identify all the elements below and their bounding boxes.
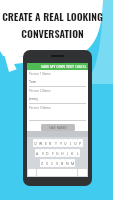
button[interactable]: D	[45, 149, 50, 157]
staticText: Z	[41, 161, 44, 166]
staticText: J	[67, 151, 68, 156]
staticText: A	[36, 151, 39, 156]
button[interactable]: B	[60, 159, 65, 167]
staticText: P	[79, 141, 82, 146]
button[interactable]: Q	[33, 139, 38, 147]
button[interactable]: V	[55, 159, 60, 167]
staticText: SAVE MY OWN TEXT	[41, 64, 74, 69]
staticText: U	[64, 141, 67, 146]
button[interactable]: O	[73, 139, 78, 147]
button[interactable]: R	[48, 139, 53, 147]
button[interactable]: F	[50, 149, 55, 157]
staticText: Q	[34, 141, 37, 146]
button[interactable]: SAVE NAMES	[41, 124, 75, 131]
staticText: T	[55, 141, 57, 146]
button[interactable]: X	[45, 159, 50, 167]
button[interactable]: E	[43, 139, 48, 147]
staticText: H	[61, 151, 64, 156]
staticText: I	[70, 141, 72, 146]
staticText: D	[46, 151, 49, 156]
button[interactable]: I	[68, 139, 73, 147]
staticText: X	[46, 161, 49, 166]
button[interactable]: K	[70, 149, 75, 157]
button[interactable]: H	[60, 149, 65, 157]
staticText: R	[49, 141, 52, 146]
button[interactable]: J	[65, 149, 70, 157]
button[interactable]: L	[75, 149, 80, 157]
button[interactable]: N	[65, 159, 70, 167]
staticText: Jenny	[29, 96, 39, 101]
staticText: N	[66, 161, 69, 166]
button[interactable]: U	[63, 139, 68, 147]
staticText: M	[71, 161, 75, 166]
staticText: Tom	[29, 79, 37, 84]
staticText: Y	[60, 141, 62, 146]
button[interactable]: Y	[58, 139, 63, 147]
staticText: SAVE NAMES	[49, 126, 67, 130]
staticText: Person 1 Name	[29, 72, 51, 76]
staticText: G	[56, 151, 59, 156]
staticText: CREATE A REAL LOOKING	[2, 9, 103, 24]
staticText: S	[42, 151, 44, 156]
staticText: F	[52, 151, 54, 156]
staticText: Person 2 Name	[29, 89, 51, 93]
button[interactable]: T	[53, 139, 58, 147]
staticText: K	[71, 151, 74, 156]
button[interactable]: G	[55, 149, 60, 157]
button[interactable]: Z	[40, 159, 45, 167]
staticText: E	[45, 141, 47, 146]
staticText: L	[77, 151, 79, 156]
button[interactable]: P	[78, 139, 83, 147]
staticText: CANCEL	[75, 65, 87, 69]
staticText: O	[74, 141, 77, 146]
staticText: C	[51, 161, 54, 166]
staticText: B	[61, 161, 64, 166]
button[interactable]: A	[35, 149, 40, 157]
staticText: W	[39, 141, 43, 146]
button[interactable]: M	[70, 159, 75, 167]
button[interactable]: S	[40, 149, 45, 157]
button[interactable]: C	[50, 159, 55, 167]
button[interactable]: W	[38, 139, 43, 147]
staticText: Person 3 Name	[29, 106, 51, 110]
staticText: V	[56, 161, 59, 166]
staticText: CONVERSATION	[21, 26, 84, 41]
